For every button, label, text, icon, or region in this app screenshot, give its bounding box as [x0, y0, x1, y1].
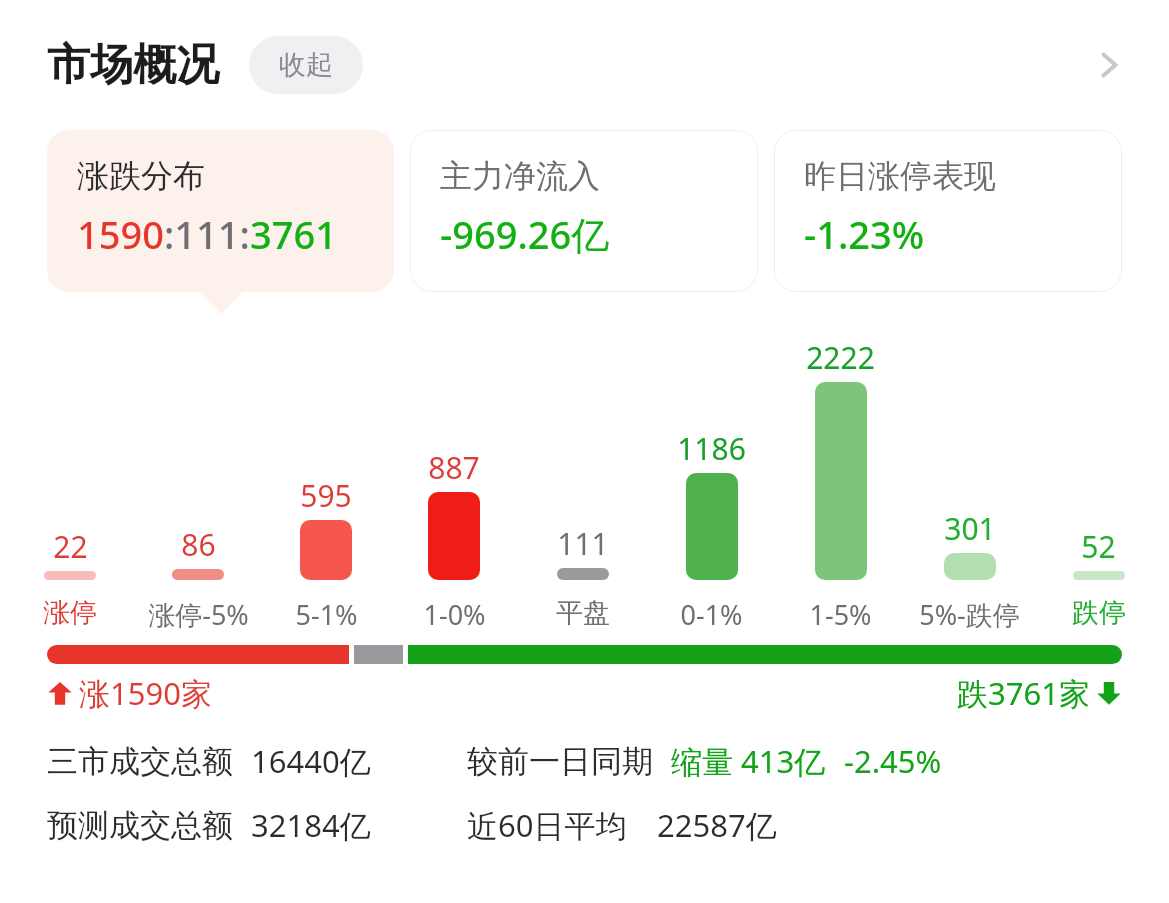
staticText: 涨停-5% — [148, 596, 249, 633]
staticText: 涨停 — [43, 596, 97, 630]
staticText: 5-1% — [295, 596, 358, 633]
staticText: 跌停 — [1072, 596, 1126, 630]
button[interactable]: 昨日涨停表现 — [774, 130, 1122, 292]
staticText: 22 — [53, 526, 88, 567]
staticText: 跌3761家 — [957, 672, 1090, 714]
staticText: -1.23% — [804, 208, 925, 260]
staticText: 较前一日同期 — [467, 742, 653, 781]
staticText: 平盘 — [556, 596, 610, 630]
staticText: 1-0% — [423, 596, 486, 633]
staticText: 涨1590家 — [79, 672, 212, 714]
button[interactable]: 收起 — [249, 36, 363, 94]
staticText: 市场概况 — [47, 38, 219, 92]
staticText: 昨日涨停表现 — [804, 156, 996, 196]
staticText: -969.26亿 — [440, 208, 610, 260]
button[interactable]: More — [1079, 35, 1139, 95]
staticText: 缩量 413亿 — [671, 740, 826, 782]
staticText: 0-1% — [680, 596, 743, 633]
staticText: 32184亿 — [251, 804, 371, 846]
staticText: 111 — [557, 523, 609, 564]
staticText: 52 — [1081, 526, 1116, 567]
staticText: 887 — [428, 447, 480, 488]
staticText: -2.45% — [844, 740, 942, 782]
button[interactable]: 涨跌分布 — [47, 130, 394, 292]
staticText: 1590 — [77, 208, 164, 260]
staticText: 1186 — [677, 428, 746, 469]
staticText: 86 — [181, 524, 216, 565]
staticText: 2222 — [806, 337, 875, 378]
staticText: 22587亿 — [657, 804, 777, 846]
staticText: 3761 — [250, 208, 337, 260]
staticText: 主力净流入 — [440, 156, 600, 196]
staticText: 5%-跌停 — [919, 596, 1020, 633]
staticText: 595 — [300, 475, 352, 516]
staticText: 301 — [944, 508, 996, 549]
staticText: 三市成交总额 — [47, 742, 233, 781]
staticText: 16440亿 — [251, 740, 371, 782]
button[interactable]: 主力净流入 — [410, 130, 758, 292]
staticText: 1-5% — [809, 596, 872, 633]
staticText: :111: — [164, 208, 250, 260]
staticText: 预测成交总额 — [47, 806, 233, 845]
staticText: 涨跌分布 — [77, 156, 205, 196]
staticText: 近60日平均 — [467, 804, 627, 846]
staticText: 收起 — [279, 48, 333, 82]
